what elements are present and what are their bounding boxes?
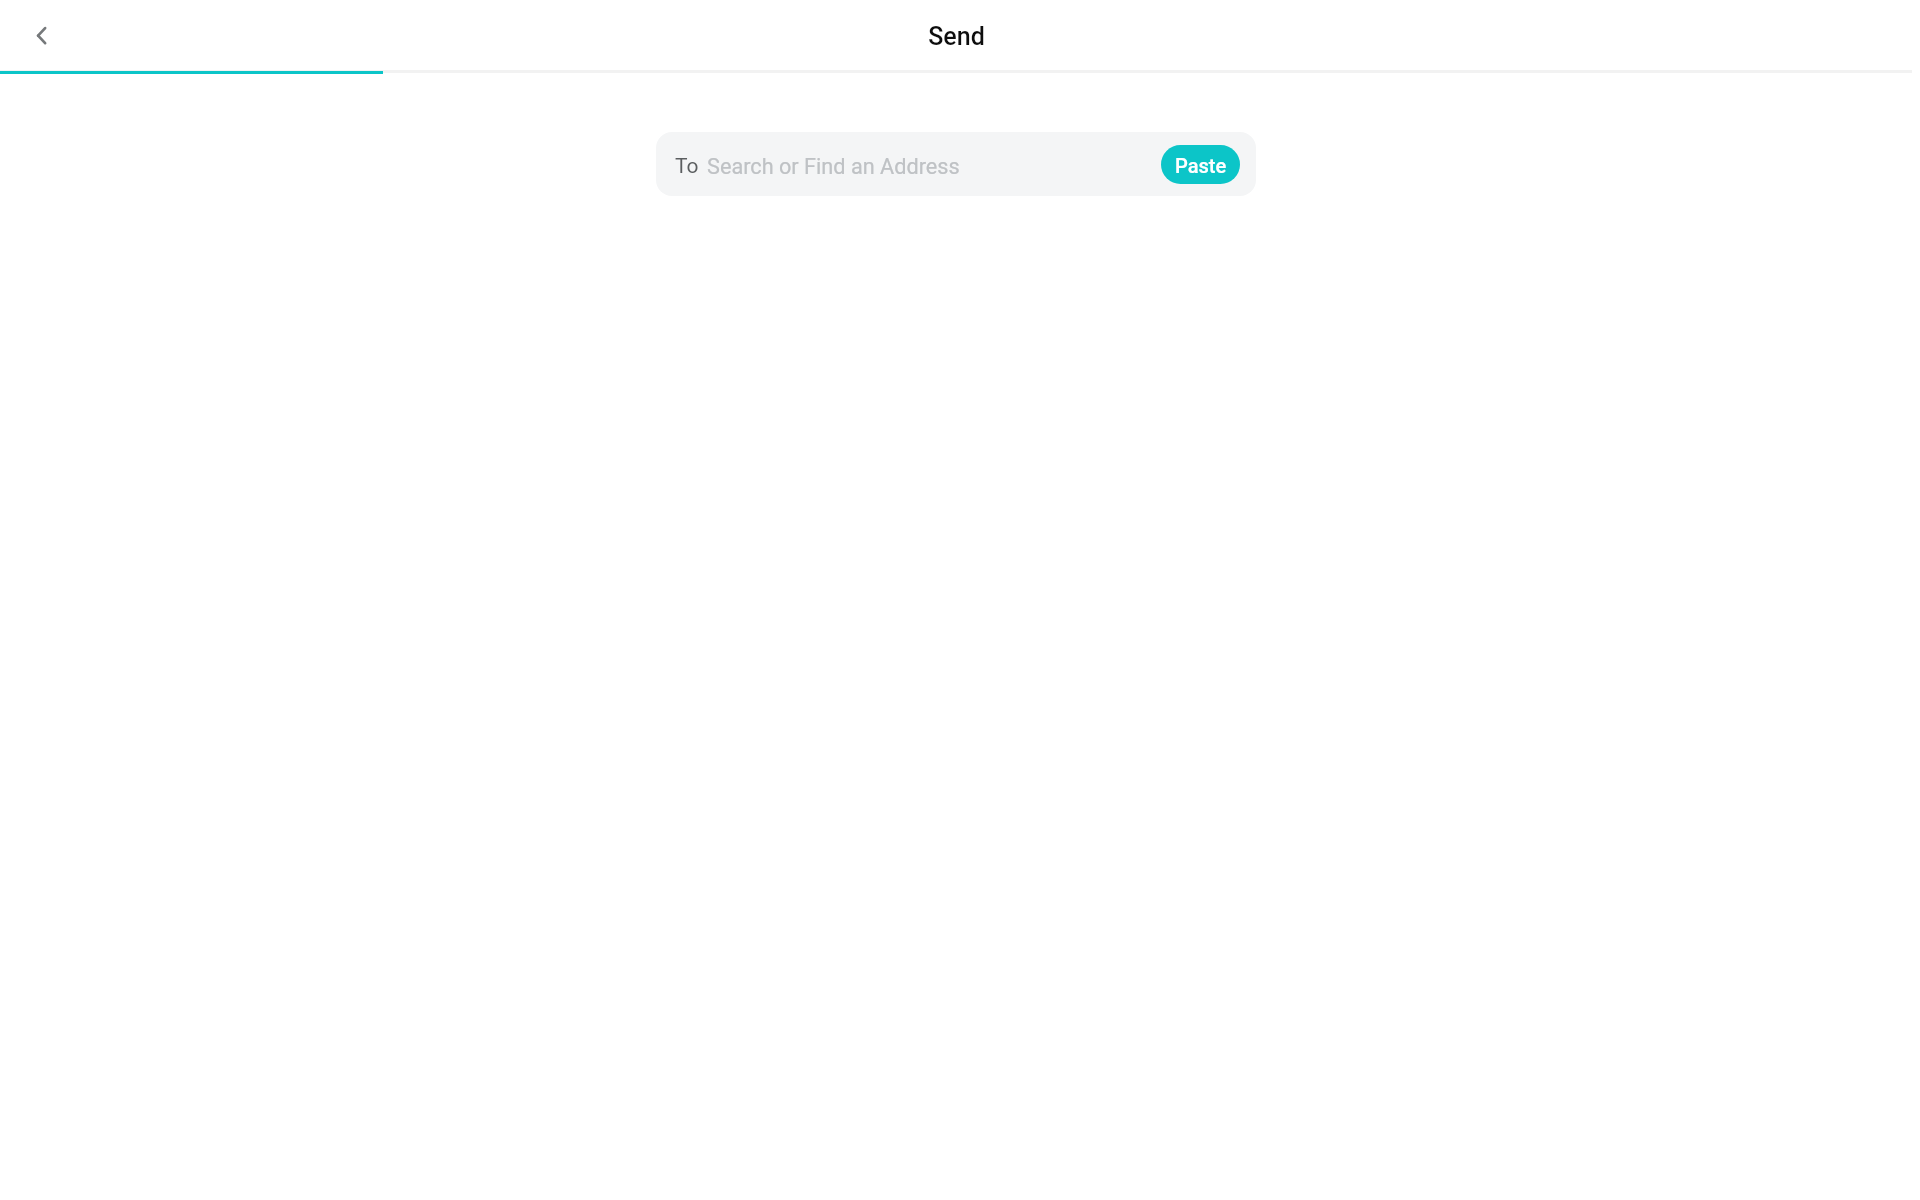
staticText: Send [928, 22, 985, 51]
button[interactable]: To [656, 132, 1256, 196]
staticText: Paste [1175, 154, 1227, 177]
staticText: To [675, 154, 699, 179]
button[interactable]: Back [20, 13, 64, 57]
button[interactable]: Paste [1161, 145, 1240, 184]
staticText: Search or Find an Address [707, 154, 960, 179]
